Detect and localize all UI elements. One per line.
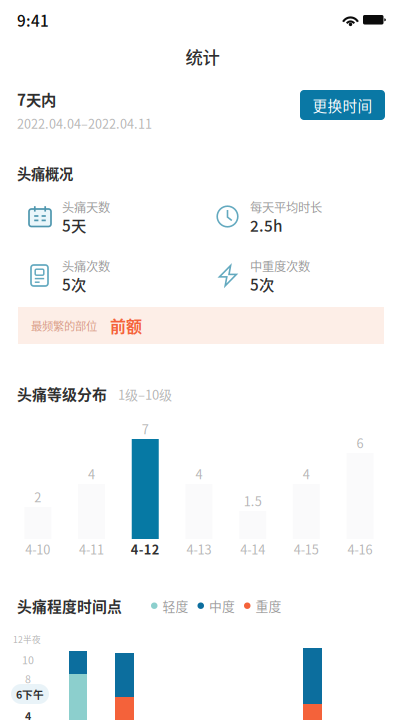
staticText: 4 — [195, 464, 202, 483]
staticText: 4 — [25, 708, 31, 720]
staticText: 6下午 — [16, 686, 44, 702]
staticText: 统计 — [185, 44, 219, 69]
button[interactable]: 更换时间 — [300, 90, 385, 120]
staticText: 4 — [303, 464, 310, 483]
staticText: 每天平均时长 — [250, 198, 322, 216]
button[interactable]: 7 — [118, 421, 172, 559]
staticText: 头痛等级分布 — [17, 383, 107, 405]
staticText: 最频繁的部位 — [31, 317, 97, 334]
staticText: 4-14 — [240, 540, 265, 558]
staticText: 4-10 — [25, 540, 50, 558]
staticText: 重度 — [255, 596, 281, 615]
button[interactable]: 4 — [279, 421, 333, 559]
staticText: 7 — [142, 419, 149, 438]
staticText: 5次 — [62, 273, 86, 295]
staticText: 4-13 — [186, 540, 211, 558]
staticText: 2 — [34, 487, 41, 506]
staticText: 1级–10级 — [118, 385, 172, 404]
staticText: 12半夜 — [13, 633, 41, 645]
staticText: 10 — [22, 652, 34, 667]
staticText: 4 — [88, 464, 95, 483]
staticText: 头痛天数 — [62, 198, 110, 216]
staticText: 4-12 — [131, 540, 160, 558]
staticText: 4-15 — [294, 540, 319, 558]
staticText: 2022.04.04–2022.04.11 — [17, 114, 152, 132]
staticText: 中重度次数 — [250, 257, 310, 275]
staticText: 更换时间 — [312, 94, 372, 116]
button[interactable]: 6 — [333, 421, 387, 559]
staticText: 6 — [357, 433, 364, 452]
staticText: 头痛程度时间点 — [17, 595, 122, 616]
staticText: 1.5 — [244, 491, 262, 510]
button[interactable]: 2 — [11, 421, 65, 559]
button[interactable]: 4 — [172, 421, 226, 559]
staticText: 5次 — [250, 273, 274, 295]
staticText: 轻度 — [162, 596, 188, 615]
staticText: 中度 — [209, 596, 235, 615]
staticText: 头痛次数 — [62, 257, 110, 275]
staticText: 前额 — [110, 314, 142, 337]
button[interactable]: 1.5 — [226, 421, 279, 559]
staticText: 2.5h — [250, 214, 283, 236]
staticText: 8 — [25, 671, 31, 686]
button[interactable]: 4 — [65, 421, 118, 559]
staticText: 头痛概况 — [17, 163, 73, 184]
staticText: 7天内 — [17, 88, 56, 110]
staticText: 9:41 — [17, 9, 49, 31]
staticText: 4-16 — [348, 540, 373, 558]
staticText: 4-11 — [79, 540, 104, 558]
staticText: 5天 — [62, 214, 86, 236]
